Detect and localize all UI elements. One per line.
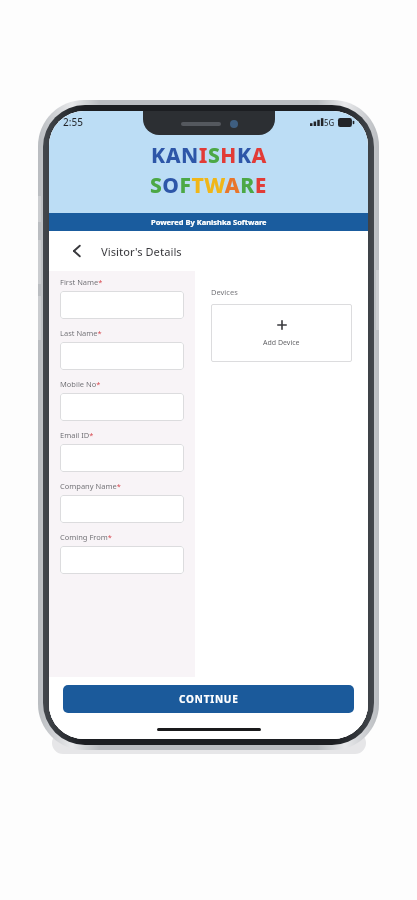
staticText: First Name* (60, 277, 103, 287)
staticText: Mobile No* (60, 379, 101, 389)
staticText: SOFTWARE (150, 171, 267, 200)
staticText: KANISHKA (151, 141, 267, 170)
staticText: Email ID* (60, 430, 94, 440)
button[interactable] (60, 291, 184, 319)
button[interactable]: Back (63, 237, 91, 265)
staticText: Visitor's Details (101, 244, 182, 259)
button[interactable]: Add Device (211, 304, 352, 362)
staticText: 2:55 (63, 115, 83, 129)
button[interactable]: CONTINUE (63, 685, 354, 713)
button[interactable] (60, 546, 184, 574)
staticText: 5G (324, 117, 335, 128)
button[interactable] (60, 342, 184, 370)
staticText: Coming From* (60, 532, 112, 542)
staticText: Devices (211, 287, 238, 297)
button[interactable] (60, 495, 184, 523)
staticText: Last Name* (60, 328, 102, 338)
staticText: Add Device (263, 338, 300, 348)
staticText: Company Name* (60, 481, 121, 491)
staticText: CONTINUE (179, 692, 239, 706)
button[interactable] (60, 393, 184, 421)
button[interactable] (60, 444, 184, 472)
staticText: Powered By Kanishka Software (151, 217, 267, 227)
